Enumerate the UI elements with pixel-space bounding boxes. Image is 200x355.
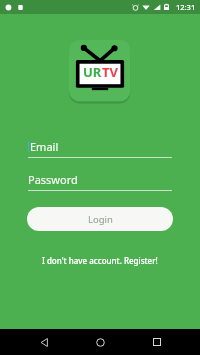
button[interactable]: Home	[87, 329, 113, 355]
staticText: I don't have account. Register!	[42, 255, 158, 266]
button[interactable]: Recent apps	[144, 329, 170, 355]
staticText: Login	[88, 213, 113, 226]
staticText: UR	[83, 63, 102, 81]
staticText: Password	[28, 172, 78, 187]
staticText: Email	[30, 139, 59, 154]
staticText: 12:31	[176, 2, 196, 12]
staticText: TV	[102, 63, 118, 81]
button[interactable]: Back	[31, 329, 57, 355]
button[interactable]: Email	[28, 139, 172, 158]
button[interactable]: Password	[28, 172, 172, 191]
button[interactable]: Login	[27, 207, 173, 231]
button[interactable]: I don't have account. Register!	[32, 251, 168, 270]
